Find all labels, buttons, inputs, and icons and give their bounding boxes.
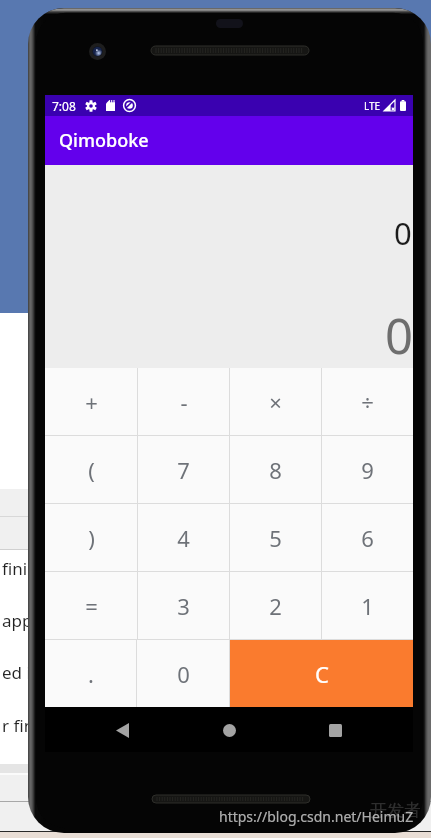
staticText: 8 <box>269 455 282 485</box>
button[interactable]: 5 <box>230 504 321 571</box>
staticText: + <box>85 387 98 417</box>
button[interactable]: 2 <box>230 572 321 639</box>
staticText: ÷ <box>361 387 374 417</box>
staticText: 9 <box>361 455 374 485</box>
button[interactable]: 4 <box>138 504 229 571</box>
button[interactable]: × <box>230 368 321 435</box>
staticText: 6 <box>361 523 374 553</box>
staticText: ( <box>88 455 95 485</box>
button[interactable]: 6 <box>322 504 413 571</box>
button[interactable]: Recents <box>313 708 357 752</box>
staticText: 4 <box>177 523 190 553</box>
staticText: = <box>85 591 98 621</box>
staticText: 开发者 <box>370 800 421 821</box>
staticText: ) <box>88 523 95 553</box>
staticText: apps <box>2 609 41 632</box>
staticText: 3 <box>177 591 190 621</box>
staticText: - <box>180 387 188 417</box>
button[interactable]: . <box>45 640 136 707</box>
button[interactable]: Home <box>207 708 251 752</box>
button[interactable]: 7 <box>138 436 229 503</box>
button[interactable]: ÷ <box>322 368 413 435</box>
staticText: 0 <box>177 659 190 689</box>
staticText: 7 <box>177 455 190 485</box>
staticText: × <box>269 387 282 417</box>
staticText: 0 <box>394 212 412 254</box>
staticText: finis <box>2 557 36 580</box>
button[interactable]: + <box>45 368 137 435</box>
button[interactable]: 3 <box>138 572 229 639</box>
staticText: . <box>88 659 94 689</box>
staticText: 1 <box>361 591 374 621</box>
staticText: 2 <box>269 591 282 621</box>
button[interactable]: ( <box>45 436 137 503</box>
staticText: C <box>315 659 329 689</box>
button[interactable]: 8 <box>230 436 321 503</box>
button[interactable]: = <box>45 572 137 639</box>
staticText: Qimoboke <box>59 128 149 153</box>
staticText: 7:08 <box>52 98 76 114</box>
staticText: 5 <box>269 523 282 553</box>
staticText: 0 <box>385 302 414 369</box>
staticText: https://blog.csdn.net/HeimuZ <box>219 807 414 826</box>
button[interactable]: C <box>230 640 413 707</box>
button[interactable]: Back <box>100 708 144 752</box>
button[interactable]: 0 <box>137 640 229 707</box>
button[interactable]: ) <box>45 504 137 571</box>
staticText: ed i <box>2 661 31 684</box>
staticText: LTE <box>364 99 381 113</box>
button[interactable]: 1 <box>322 572 413 639</box>
button[interactable]: - <box>138 368 229 435</box>
button[interactable]: 9 <box>322 436 413 503</box>
staticText: r finis <box>2 714 47 737</box>
